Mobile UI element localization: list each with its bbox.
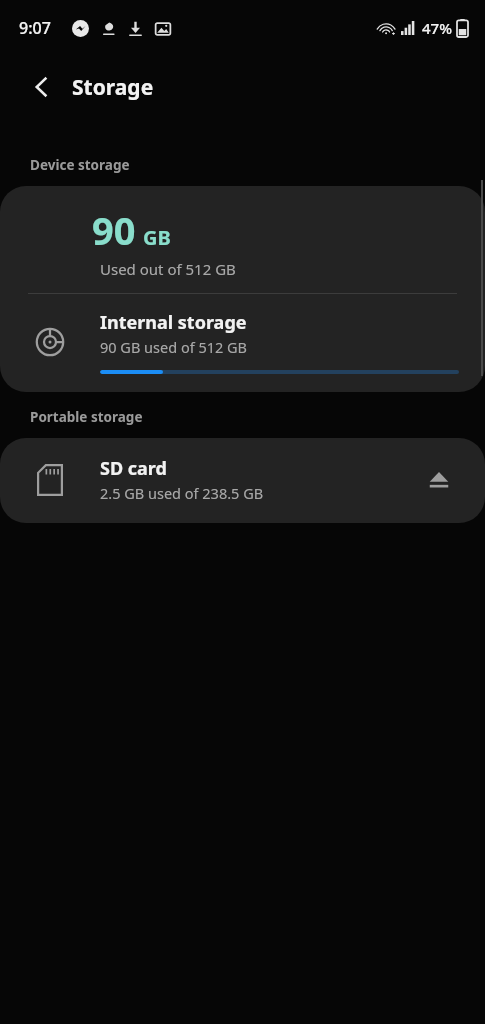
staticText: 90 xyxy=(92,204,136,256)
button[interactable]: Internal storage xyxy=(0,294,485,392)
staticText: SD card xyxy=(100,456,167,481)
staticText: 9:07 xyxy=(19,17,51,39)
button[interactable]: SD card xyxy=(0,438,485,523)
staticText: Storage xyxy=(72,73,154,102)
staticText: Internal storage xyxy=(100,310,247,335)
staticText: 90 GB used of 512 GB xyxy=(100,337,248,357)
staticText: 2.5 GB used of 238.5 GB xyxy=(100,483,264,503)
staticText: Device storage xyxy=(30,156,130,174)
staticText: 47% xyxy=(422,18,452,38)
staticText: Portable storage xyxy=(30,408,143,426)
staticText: Used out of 512 GB xyxy=(100,259,236,279)
staticText: GB xyxy=(143,224,171,251)
button[interactable]: Eject SD card xyxy=(417,458,461,502)
button[interactable]: Back xyxy=(18,63,66,111)
